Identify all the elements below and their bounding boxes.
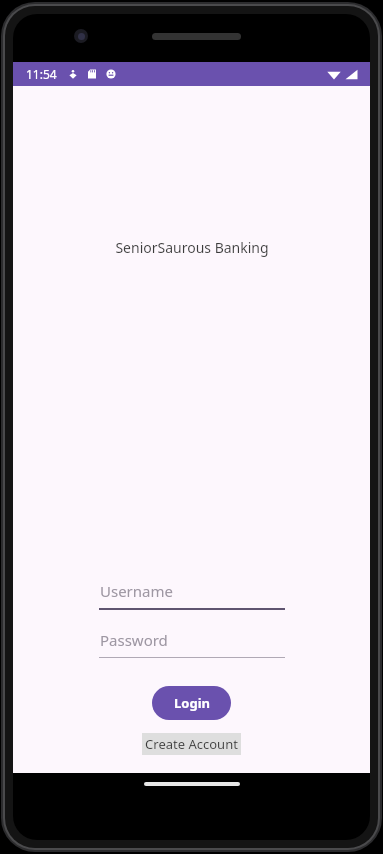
button[interactable]: Password (99, 630, 285, 658)
staticText: Create Account (145, 735, 238, 753)
staticText: Username (100, 581, 173, 601)
staticText: Password (100, 630, 168, 650)
button[interactable]: Login (152, 686, 231, 720)
staticText: 11:54 (26, 66, 57, 82)
button[interactable]: Create Account (142, 733, 241, 755)
staticText: Login (174, 694, 210, 712)
button[interactable]: Username (99, 581, 285, 610)
staticText: SeniorSaurous Banking (115, 238, 269, 257)
